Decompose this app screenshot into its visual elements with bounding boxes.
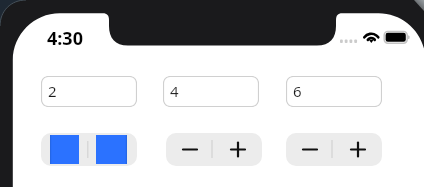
button[interactable]: Increment bbox=[336, 133, 382, 166]
button[interactable]: Increment bbox=[216, 133, 262, 166]
staticText: 4 bbox=[170, 81, 179, 101]
other: Battery bbox=[383, 30, 411, 46]
other: Wi-Fi bbox=[362, 30, 381, 45]
staticText: 6 bbox=[293, 81, 302, 101]
button[interactable]: 4 bbox=[163, 76, 259, 107]
button[interactable]: 2 bbox=[41, 76, 137, 107]
other: Cellular signal bbox=[339, 38, 359, 46]
button[interactable]: Decrement bbox=[286, 133, 332, 166]
button[interactable]: Decrement bbox=[166, 133, 212, 166]
staticText: 2 bbox=[48, 81, 57, 101]
button[interactable]: 6 bbox=[286, 76, 382, 107]
staticText: 4:30 bbox=[47, 26, 83, 51]
button[interactable]: Toggle bbox=[41, 133, 137, 166]
